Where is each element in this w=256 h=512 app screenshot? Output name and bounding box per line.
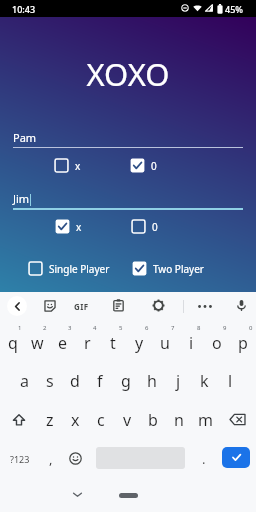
staticText: i [189, 332, 194, 354]
button[interactable]: ?123 [5, 439, 35, 478]
button[interactable]: x [62, 400, 88, 439]
staticText: 0 [152, 220, 158, 234]
staticText: 10:43 [12, 3, 36, 15]
button[interactable]: n [166, 400, 192, 439]
staticText: k [200, 370, 209, 392]
button[interactable]: c [88, 400, 114, 439]
staticText: XOXO [0, 53, 256, 95]
button[interactable]: a [12, 361, 37, 400]
staticText: w [31, 332, 44, 354]
button[interactable]: Back [7, 296, 27, 316]
button[interactable]: x [55, 219, 82, 234]
button[interactable]: k [191, 361, 217, 400]
button[interactable]: Single Player [28, 261, 110, 276]
button[interactable]: 0 [230, 321, 256, 361]
button[interactable]: Two Player [132, 261, 204, 276]
staticText: a [20, 370, 29, 392]
button[interactable]: 4 [75, 321, 100, 361]
staticText: x [75, 159, 81, 173]
button[interactable]: Home [119, 493, 138, 498]
button[interactable]: 3 [50, 321, 75, 361]
staticText: t [110, 332, 116, 354]
button[interactable]: z [37, 400, 62, 439]
staticText: j [176, 370, 181, 392]
staticText: g [121, 370, 131, 392]
button[interactable]: g [113, 361, 139, 400]
button[interactable]: 8 [178, 321, 204, 361]
staticText: v [123, 409, 132, 431]
staticText: 7 [171, 324, 175, 332]
button[interactable]: f [87, 361, 113, 400]
staticText: r [84, 332, 91, 354]
button[interactable]: 0 [130, 158, 157, 173]
staticText: d [70, 370, 80, 392]
button[interactable]: More options [197, 300, 213, 313]
staticText: n [174, 409, 184, 431]
staticText: y [135, 332, 144, 354]
staticText: ?123 [10, 453, 30, 465]
button[interactable]: b [140, 400, 166, 439]
staticText: 6 [145, 324, 149, 332]
staticText: , [49, 450, 53, 468]
button[interactable]: s [37, 361, 62, 400]
staticText: GIF [74, 301, 89, 312]
staticText: Single Player [49, 262, 110, 276]
button[interactable]: h [139, 361, 165, 400]
staticText: 0 [151, 159, 157, 173]
button[interactable]: d [62, 361, 87, 400]
button[interactable]: 1 [0, 321, 25, 361]
staticText: 2 [43, 324, 47, 332]
button[interactable]: x [54, 158, 81, 173]
button[interactable]: Backspace [218, 400, 256, 439]
staticText: Pam [13, 130, 37, 145]
button[interactable]: m [192, 400, 218, 439]
button[interactable]: 0 [131, 219, 158, 234]
button[interactable]: Voice input [235, 299, 248, 312]
staticText: s [46, 370, 54, 392]
staticText: u [160, 332, 170, 354]
staticText: l [228, 370, 233, 392]
button[interactable]: Enter [222, 447, 250, 468]
button[interactable]: l [217, 361, 243, 400]
staticText: x [71, 409, 80, 431]
button[interactable]: 6 [126, 321, 152, 361]
staticText: f [97, 370, 103, 392]
button[interactable]: j [165, 361, 191, 400]
staticText: 8 [197, 324, 201, 332]
button[interactable]: Emoji [64, 439, 86, 478]
staticText: o [212, 332, 222, 354]
button[interactable]: v [114, 400, 140, 439]
button[interactable]: 9 [204, 321, 230, 361]
button[interactable]: . [193, 439, 215, 478]
button[interactable]: , [40, 439, 62, 478]
staticText: 1 [18, 324, 22, 332]
staticText: p [238, 332, 248, 354]
button[interactable]: 2 [25, 321, 50, 361]
staticText: 5 [119, 324, 123, 332]
staticText: 3 [68, 324, 72, 332]
staticText: Jim [13, 191, 30, 206]
button[interactable]: GIF [74, 292, 89, 321]
staticText: z [46, 409, 54, 431]
button[interactable]: Stickers [44, 300, 56, 312]
staticText: 9 [223, 324, 227, 332]
staticText: 0 [249, 324, 253, 332]
staticText: e [58, 332, 68, 354]
staticText: x [76, 220, 82, 234]
button[interactable]: 5 [100, 321, 126, 361]
staticText: h [147, 370, 157, 392]
button[interactable]: 7 [152, 321, 178, 361]
button[interactable]: Hide keyboard [70, 487, 85, 502]
staticText: q [8, 332, 18, 354]
button[interactable]: Clipboard [112, 299, 125, 312]
staticText: 4 [93, 324, 97, 332]
button[interactable]: Shift [0, 400, 37, 439]
staticText: . [202, 450, 206, 468]
button[interactable]: Settings [152, 299, 165, 312]
staticText: c [97, 409, 105, 431]
staticText: m [198, 409, 213, 431]
staticText: Two Player [153, 262, 204, 276]
staticText: b [148, 409, 158, 431]
staticText: 45% [225, 3, 243, 15]
